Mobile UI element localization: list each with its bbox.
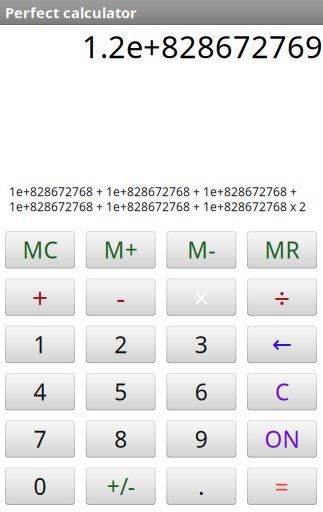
staticText: . [198,471,204,501]
staticText: 6 [195,377,208,407]
button[interactable]: 3 [166,326,236,363]
staticText: + [32,278,48,316]
button[interactable]: M+ [86,231,156,268]
button[interactable]: 6 [166,373,236,410]
staticText: 1e+828672768 + 1e+828672768 + 1e+8286727… [9,183,297,199]
staticText: M+ [104,235,138,265]
button[interactable]: 4 [5,373,75,410]
button[interactable]: 0 [5,467,75,505]
staticText: Perfect calculator [5,3,137,22]
staticText: 0 [33,471,46,501]
staticText: 5 [114,377,127,407]
staticText: - [116,278,125,316]
staticText: ÷ [274,278,290,316]
staticText: C [275,377,289,407]
staticText: 1e+828672768 + 1e+828672768 + 1e+8286727… [9,198,306,214]
button[interactable]: 5 [86,373,156,410]
button[interactable]: +/- [86,467,156,505]
staticText: 4 [33,377,46,407]
button[interactable]: - [86,278,156,316]
staticText: × [193,278,209,316]
staticText: 1.2e+828672769 [82,26,323,67]
button[interactable]: 2 [86,326,156,363]
button[interactable]: MC [5,231,75,268]
staticText: M- [187,235,215,265]
staticText: 1 [33,329,46,359]
staticText: 9 [195,424,208,454]
staticText: 3 [195,329,208,359]
button[interactable]: MR [247,231,317,268]
staticText: 7 [33,424,46,454]
button[interactable]: ← [247,326,317,363]
button[interactable]: 9 [166,420,236,458]
button[interactable]: ÷ [247,278,317,316]
button[interactable]: × [166,278,236,316]
button[interactable]: + [5,278,75,316]
staticText: = [275,470,289,502]
button[interactable]: M- [166,231,236,268]
staticText: MC [22,235,57,265]
button[interactable]: 8 [86,420,156,458]
staticText: 8 [114,424,127,454]
staticText: MR [264,235,299,265]
button[interactable]: . [166,467,236,505]
button[interactable]: ON [247,420,317,458]
staticText: 2 [114,329,127,359]
button[interactable]: 1 [5,326,75,363]
button[interactable]: 7 [5,420,75,458]
staticText: ← [272,331,292,358]
button[interactable]: = [247,467,317,505]
button[interactable]: C [247,373,317,410]
staticText: +/- [107,471,135,501]
staticText: ON [264,424,299,454]
